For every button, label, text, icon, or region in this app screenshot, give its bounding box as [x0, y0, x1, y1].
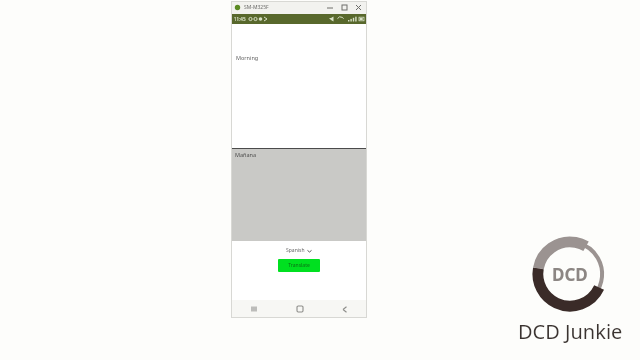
button[interactable]: Minimize	[323, 1, 337, 14]
staticText: Translate	[288, 262, 310, 269]
staticText: DCD	[552, 263, 588, 286]
staticText: Spanish	[286, 247, 305, 254]
staticText: Mañana	[235, 151, 257, 158]
button[interactable]: Mañana	[231, 149, 367, 241]
button[interactable]: Recents	[231, 300, 277, 318]
button[interactable]: Back	[322, 300, 367, 318]
button[interactable]: Maximize	[337, 1, 351, 14]
button[interactable]: Translate	[278, 259, 320, 272]
staticText: DCD Junkie	[518, 318, 623, 345]
button[interactable]: Spanish	[284, 246, 314, 255]
button[interactable]: Close	[351, 1, 365, 14]
button[interactable]: Morning	[231, 24, 367, 148]
staticText: SM-M325F	[244, 4, 269, 11]
staticText: 11:45	[234, 16, 246, 22]
button[interactable]: Home	[277, 300, 322, 318]
staticText: Morning	[236, 54, 259, 61]
